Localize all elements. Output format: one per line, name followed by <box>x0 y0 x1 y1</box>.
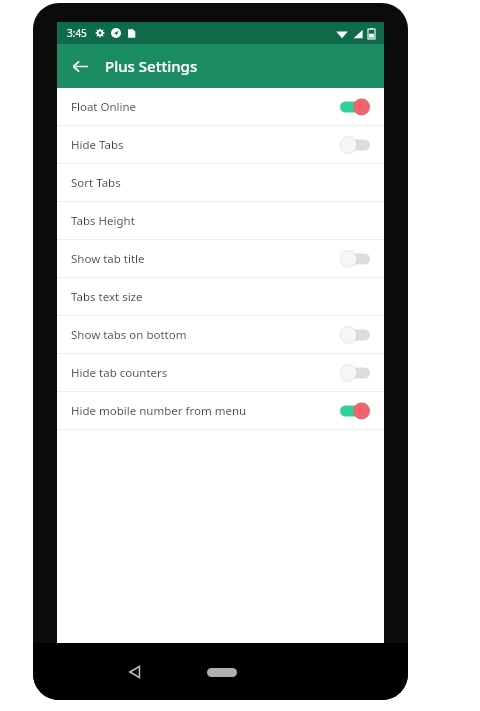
button[interactable]: Hide mobile number from menu <box>57 392 384 429</box>
button[interactable]: Tabs Height <box>57 202 384 239</box>
button[interactable]: Float Online <box>57 88 384 125</box>
staticText: Show tabs on bottom <box>71 327 340 343</box>
staticText: Hide Tabs <box>71 137 340 153</box>
button[interactable]: Sort Tabs <box>57 164 384 201</box>
staticText: Hide mobile number from menu <box>71 403 340 419</box>
staticText: Sort Tabs <box>71 175 370 191</box>
button[interactable]: Home <box>201 661 243 683</box>
staticText: 3:45 <box>67 26 87 40</box>
button[interactable]: Show tabs on bottom <box>57 316 384 353</box>
staticText: Plus Settings <box>105 56 198 76</box>
button[interactable]: Hide tab counters <box>57 354 384 391</box>
button[interactable]: Off <box>340 326 370 344</box>
staticText: Tabs text size <box>71 289 370 305</box>
button[interactable]: Hide Tabs <box>57 126 384 163</box>
staticText: Tabs Height <box>71 213 370 229</box>
staticText: Show tab title <box>71 251 340 267</box>
button[interactable]: Off <box>340 250 370 268</box>
staticText: Float Online <box>71 99 340 115</box>
button[interactable]: Tabs text size <box>57 278 384 315</box>
button[interactable]: Show tab title <box>57 240 384 277</box>
staticText: Hide tab counters <box>71 365 340 381</box>
button[interactable]: Off <box>340 136 370 154</box>
button[interactable]: On <box>340 98 370 116</box>
button[interactable]: Off <box>340 364 370 382</box>
button[interactable]: Back <box>65 51 95 81</box>
button[interactable]: On <box>340 402 370 420</box>
button[interactable]: Back <box>119 657 149 687</box>
